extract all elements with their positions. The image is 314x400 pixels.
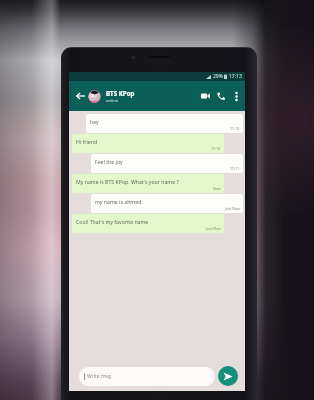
- button[interactable]: Write msg: [79, 367, 215, 386]
- button[interactable]: my name is ahmed: [91, 194, 243, 213]
- button[interactable]: Profile photo: [88, 90, 101, 103]
- staticText: 17:10: [211, 146, 221, 151]
- button[interactable]: More options: [229, 85, 243, 107]
- button[interactable]: Voice call: [213, 85, 229, 107]
- staticText: Write msg: [87, 373, 112, 380]
- staticText: Now: [213, 186, 221, 191]
- button[interactable]: Hi friend: [72, 134, 224, 153]
- button[interactable]: Cool! That's my favorite name: [72, 214, 224, 233]
- staticText: Just Now: [225, 206, 240, 211]
- button[interactable]: Send: [218, 366, 238, 386]
- staticText: my name is ahmed: [95, 198, 142, 205]
- button[interactable]: Back: [73, 86, 87, 106]
- button[interactable]: My name is BTS KPop. What's your name ?: [72, 174, 224, 193]
- staticText: Feel the joy: [95, 158, 123, 165]
- staticText: online: [106, 98, 119, 104]
- staticText: 17:10: [230, 126, 240, 131]
- staticText: BTS KPop: [106, 89, 135, 97]
- staticText: Cool! That's my favorite name: [76, 218, 149, 225]
- button[interactable]: Feel the joy: [91, 154, 243, 173]
- button[interactable]: hey: [86, 114, 243, 133]
- staticText: My name is BTS KPop. What's your name ?: [76, 178, 179, 185]
- staticText: Hi friend: [76, 138, 98, 145]
- staticText: 17:13: [229, 73, 242, 80]
- button[interactable]: Video call: [197, 85, 213, 107]
- staticText: Just Now: [206, 226, 221, 231]
- staticText: 17:11: [230, 166, 240, 171]
- staticText: hey: [90, 118, 99, 125]
- staticText: 29%: [213, 73, 223, 80]
